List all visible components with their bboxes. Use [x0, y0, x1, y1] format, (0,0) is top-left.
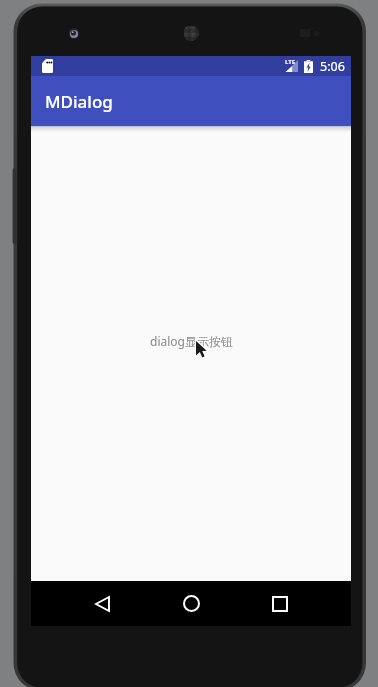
button[interactable]: Back — [72, 581, 132, 626]
button[interactable]: dialog显示按钮 — [140, 327, 243, 355]
button[interactable]: Home — [161, 581, 221, 626]
button[interactable]: Recents — [250, 581, 310, 626]
staticText: MDialog — [45, 90, 113, 113]
staticText: LTE — [285, 58, 296, 66]
staticText: dialog显示按钮 — [150, 333, 233, 349]
staticText: 5:06 — [320, 58, 345, 75]
